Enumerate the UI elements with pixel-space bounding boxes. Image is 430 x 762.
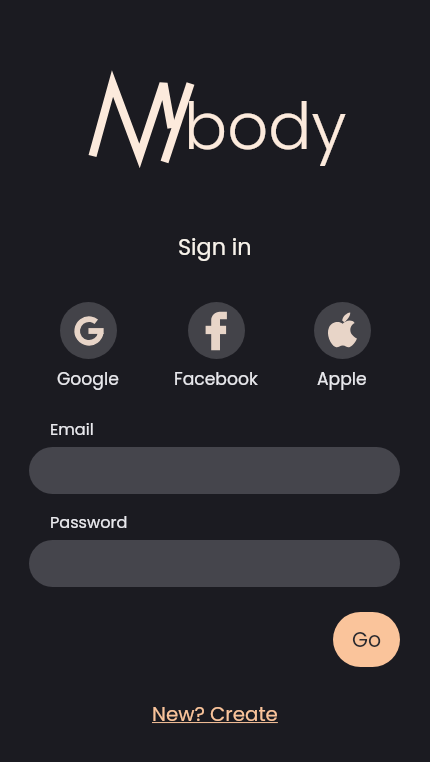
staticText: Google xyxy=(57,367,119,391)
button[interactable]: Email field xyxy=(29,447,400,494)
staticText: Password xyxy=(50,511,128,534)
staticText: Facebook xyxy=(174,367,258,391)
button[interactable]: New? Create xyxy=(152,700,278,728)
button[interactable]: Sign in with Facebook xyxy=(188,302,245,359)
staticText: Apple xyxy=(317,367,367,391)
button[interactable]: Sign in with Apple xyxy=(314,302,371,359)
staticText: body xyxy=(184,82,347,172)
button[interactable]: Sign in with Google xyxy=(60,302,117,359)
staticText: Go xyxy=(352,625,382,654)
staticText: New? Create xyxy=(152,700,278,728)
staticText: Sign in xyxy=(178,232,252,263)
button[interactable]: Password field xyxy=(29,540,400,587)
staticText: Email xyxy=(50,418,94,441)
button[interactable]: Go xyxy=(333,612,400,667)
